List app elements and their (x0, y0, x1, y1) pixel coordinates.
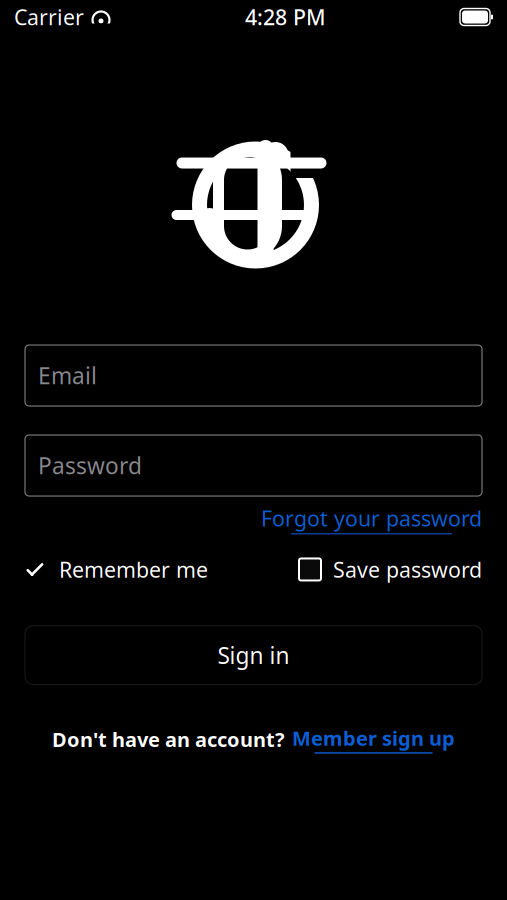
staticText: Password (38, 450, 142, 480)
button[interactable]: Forgot your password (261, 504, 482, 534)
button[interactable]: Save password (299, 555, 482, 584)
staticText: Save password (333, 555, 482, 584)
staticText: Member sign up (292, 725, 455, 751)
button[interactable]: Password (25, 435, 482, 496)
staticText: Forgot your password (261, 504, 482, 532)
button[interactable]: Remember me (25, 555, 208, 584)
button[interactable]: Sign in (25, 626, 482, 685)
staticText: Sign in (217, 640, 289, 670)
staticText: Remember me (59, 555, 208, 584)
button[interactable]: Email (25, 345, 482, 406)
staticText: Carrier (14, 3, 84, 31)
staticText: 4:28 PM (245, 3, 326, 31)
staticText: Email (38, 360, 97, 390)
button[interactable]: Member sign up (292, 725, 455, 754)
staticText: Don't have an account? (52, 726, 285, 752)
